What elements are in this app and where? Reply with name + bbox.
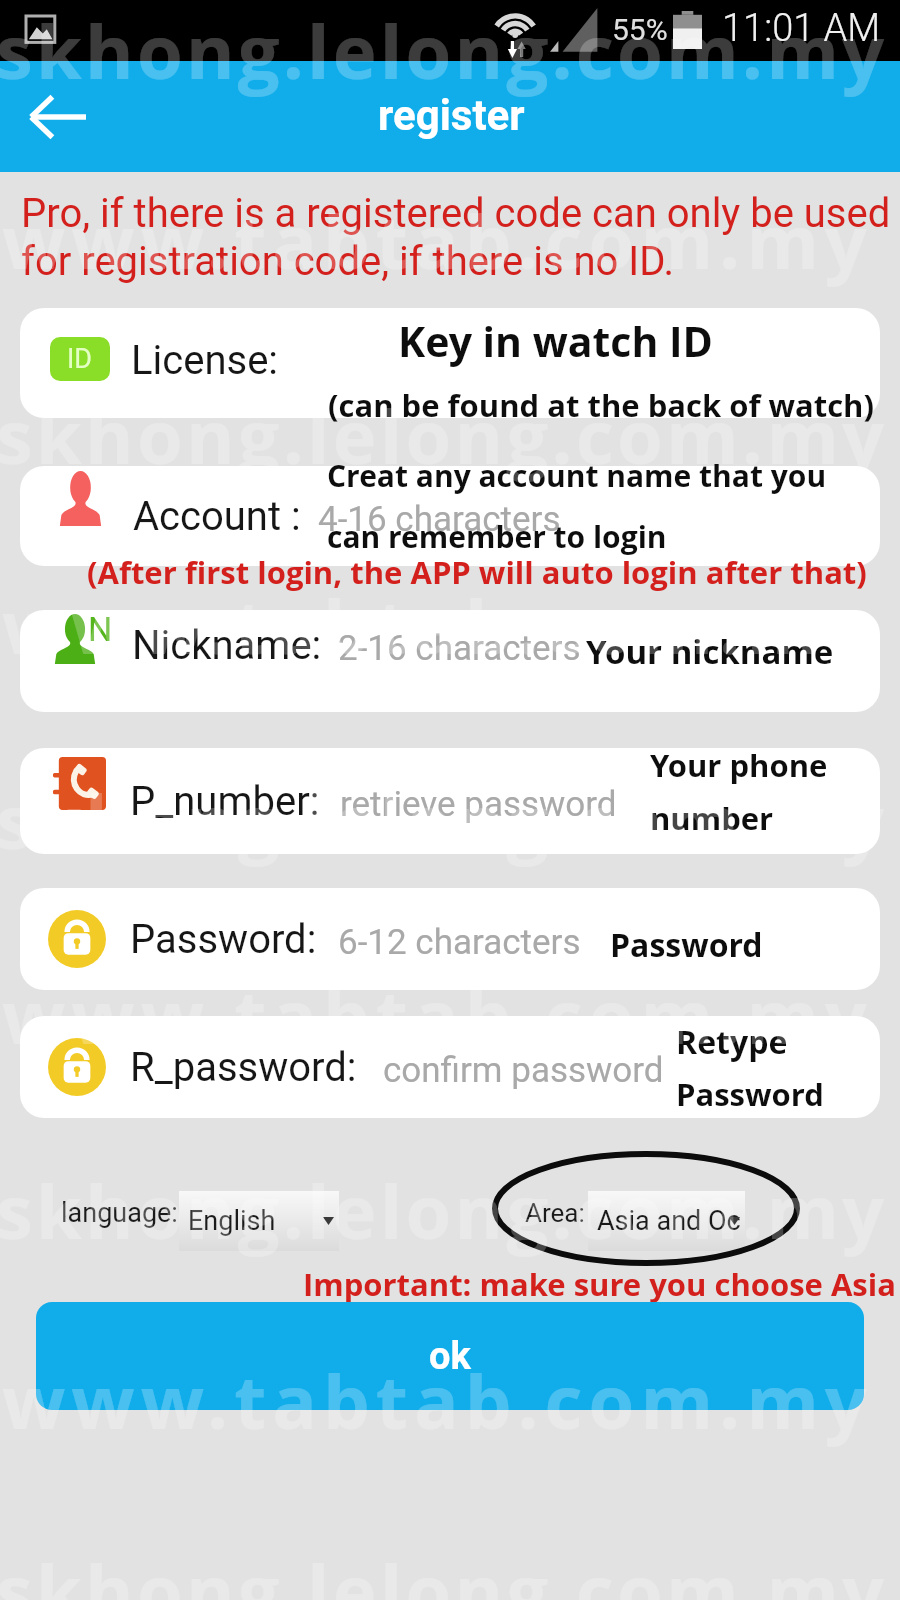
staticText: www.tabtab.com.my (2, 575, 873, 676)
staticText: 6-12 characters (338, 922, 581, 963)
staticText: (can be found at the back of watch) (328, 384, 874, 426)
staticText: (After first login, the APP will auto lo… (87, 551, 867, 593)
staticText: www.tabtab.com.my (2, 965, 873, 1066)
button[interactable]: English (179, 1191, 339, 1251)
button[interactable]: Password: (20, 888, 880, 990)
staticText: Pro, if there is a registered code can o… (21, 190, 891, 237)
staticText: 4-16 characters (318, 499, 561, 540)
staticText: Your phone (650, 744, 828, 786)
staticText: English (188, 1205, 276, 1237)
staticText: Creat any account name that you (327, 455, 827, 496)
staticText: skhong.lelong.com.my (0, 770, 888, 871)
staticText: ok (429, 1334, 471, 1379)
staticText: Nickname: (132, 622, 322, 669)
staticText: skhong.lelong.com.my (0, 1160, 888, 1261)
staticText: Key in watch ID (398, 313, 713, 369)
staticText: skhong.lelong.com.my (0, 0, 888, 101)
staticText: confirm password (383, 1050, 664, 1091)
staticText: Password (610, 923, 763, 967)
staticText: www.tabtab.com.my (2, 190, 873, 291)
button[interactable]: ok (36, 1302, 864, 1410)
staticText: 2-16 characters (338, 628, 581, 669)
staticText: ID (67, 343, 93, 375)
button[interactable]: Account : (20, 466, 880, 566)
button[interactable]: N (20, 610, 880, 712)
staticText: N (88, 610, 113, 649)
staticText: 11:01 AM (722, 6, 881, 51)
staticText: language: (61, 1197, 178, 1229)
button[interactable]: Asia and Oc (588, 1191, 745, 1251)
staticText: License: (131, 337, 279, 384)
staticText: Area: (525, 1198, 585, 1228)
staticText: www.tabtab.com.my (2, 1350, 873, 1451)
staticText: register (378, 91, 525, 140)
staticText: Retype (676, 1020, 788, 1064)
staticText: Asia and Oc (597, 1205, 741, 1237)
button[interactable]: ID (20, 308, 880, 418)
staticText: Password (676, 1073, 824, 1115)
button[interactable]: P_number: (20, 748, 880, 854)
staticText: Important: make sure you choose Asia (303, 1263, 896, 1305)
staticText: 55% (612, 12, 668, 47)
staticText: skhong.lelong.com.my (0, 385, 888, 486)
staticText: P_number: (130, 778, 320, 825)
staticText: Account : (133, 493, 301, 540)
staticText: Your nickname (586, 629, 834, 674)
button[interactable]: R_password: (20, 1016, 880, 1118)
staticText: can remember to login (327, 516, 667, 557)
button[interactable]: Back (14, 79, 102, 155)
staticText: R_password: (130, 1044, 357, 1091)
staticText: retrieve password (340, 784, 617, 825)
staticText: for registration code, if there is no ID… (21, 238, 674, 285)
staticText: number (650, 797, 774, 839)
staticText: Password: (130, 916, 317, 963)
